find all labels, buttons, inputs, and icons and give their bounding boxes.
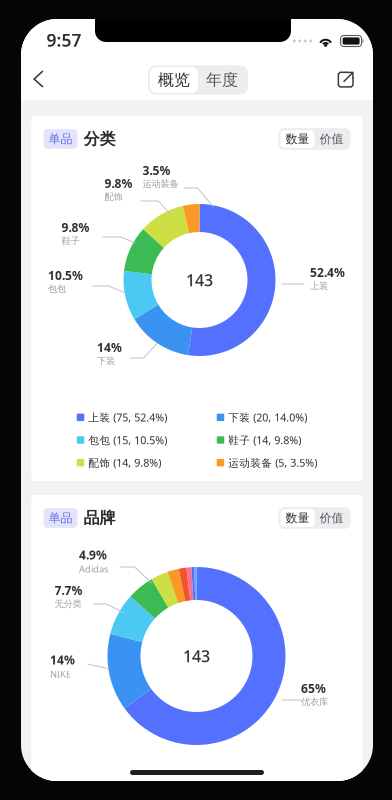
staticText: 配饰 (14, 9.8%)	[88, 456, 161, 470]
button[interactable]: 价值	[314, 130, 348, 148]
staticText: 包包	[48, 283, 66, 295]
staticText: 9.8%	[61, 219, 89, 235]
staticText: 包包 (15, 10.5%)	[88, 433, 167, 447]
button[interactable]: 数量	[280, 130, 314, 148]
staticText: 52.4%	[310, 264, 345, 280]
button[interactable]: Back	[18, 59, 58, 99]
staticText: 143	[183, 645, 210, 667]
staticText: NIKE	[50, 668, 71, 680]
staticText: 10.5%	[48, 267, 83, 283]
staticText: 143	[186, 269, 213, 291]
staticText: 9.8%	[104, 175, 132, 191]
staticText: 分类	[83, 129, 115, 149]
staticText: 运动装备 (5, 3.5%)	[228, 456, 317, 470]
staticText: 14%	[97, 339, 122, 355]
button[interactable]: 年度	[198, 67, 246, 93]
staticText: 数量	[285, 132, 309, 146]
staticText: 鞋子	[61, 235, 79, 247]
staticText: Adidas	[79, 563, 108, 575]
staticText: 概览	[158, 70, 190, 90]
staticText: 优衣库	[301, 696, 328, 708]
staticText: 年度	[206, 70, 238, 90]
staticText: 单品	[48, 511, 72, 525]
staticText: 无分类	[54, 598, 81, 610]
button[interactable]: 价值	[314, 509, 348, 527]
staticText: 下装 (20, 14.0%)	[228, 410, 307, 424]
button[interactable]: 概览	[150, 67, 198, 93]
staticText: 品牌	[83, 508, 115, 528]
staticText: 上装	[310, 280, 328, 292]
staticText: 鞋子 (14, 9.8%)	[228, 433, 301, 447]
staticText: 配饰	[104, 191, 122, 203]
staticText: 7.7%	[54, 582, 82, 598]
staticText: 下装	[97, 355, 115, 367]
staticText: 运动装备	[142, 178, 178, 190]
staticText: 65%	[301, 680, 326, 696]
staticText: 3.5%	[142, 162, 170, 178]
staticText: 上装 (75, 52.4%)	[88, 410, 167, 424]
button[interactable]: Share	[325, 59, 365, 99]
button[interactable]: 数量	[280, 509, 314, 527]
staticText: 价值	[319, 132, 343, 146]
staticText: 4.9%	[79, 547, 107, 563]
staticText: 单品	[48, 132, 72, 146]
staticText: 9:57	[46, 28, 81, 51]
staticText: 数量	[285, 511, 309, 525]
staticText: 14%	[50, 652, 75, 668]
staticText: 价值	[319, 511, 343, 525]
